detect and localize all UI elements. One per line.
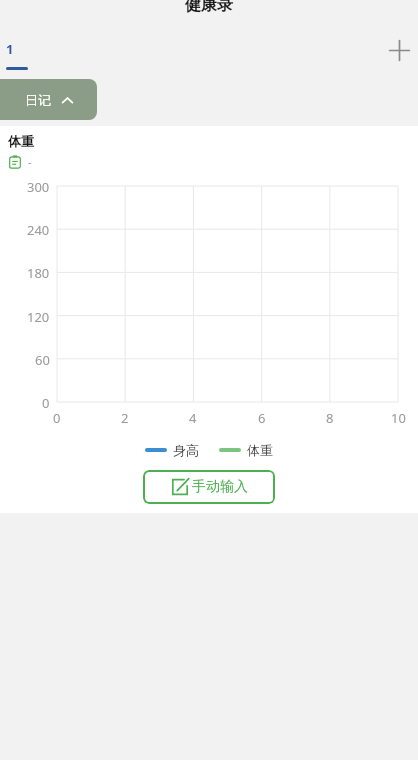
button[interactable]: 1 <box>4 40 30 70</box>
staticText: 1 <box>6 40 14 58</box>
staticText: 日记 <box>25 92 51 108</box>
staticText: 健康录 <box>185 0 233 15</box>
staticText: 0 <box>53 409 61 427</box>
staticText: 4 <box>189 409 197 427</box>
staticText: 0 <box>42 394 50 412</box>
staticText: 300 <box>27 178 50 196</box>
staticText: - <box>28 154 32 169</box>
staticText: 240 <box>27 221 50 239</box>
button[interactable]: 手动输入 <box>143 470 275 504</box>
staticText: 手动输入 <box>192 478 248 496</box>
button[interactable]: Add <box>385 36 413 64</box>
staticText: 180 <box>27 264 50 282</box>
staticText: 10 <box>391 409 406 427</box>
staticText: 2 <box>121 409 129 427</box>
staticText: 120 <box>27 308 50 326</box>
staticText: 6 <box>258 409 266 427</box>
staticText: 8 <box>326 409 334 427</box>
button[interactable]: 日记 <box>0 79 97 120</box>
staticText: 60 <box>35 351 50 369</box>
staticText: 体重 <box>247 442 273 458</box>
staticText: 身高 <box>173 442 199 458</box>
staticText: 体重 <box>8 133 34 149</box>
